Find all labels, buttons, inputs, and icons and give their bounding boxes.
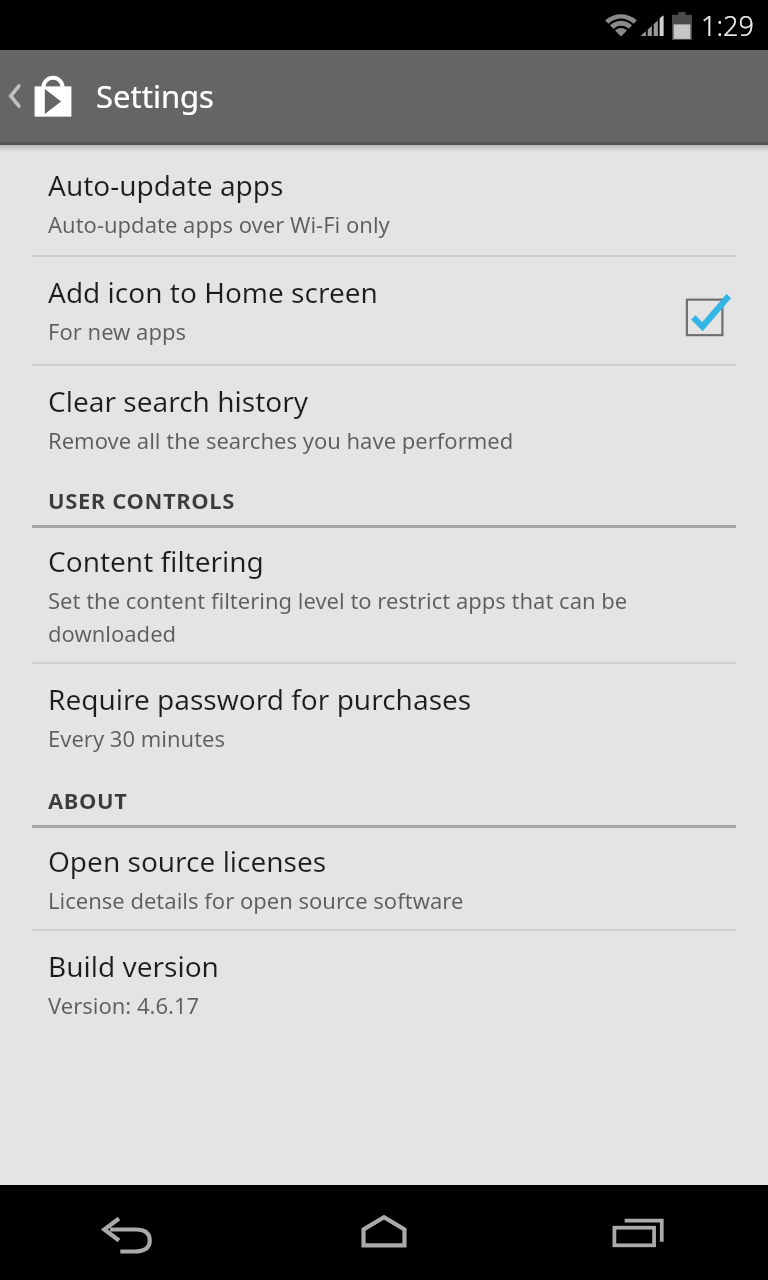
staticText: Auto-update apps bbox=[48, 166, 284, 204]
staticText: For new apps bbox=[48, 316, 187, 346]
staticText: Add icon to Home screen bbox=[48, 273, 378, 311]
staticText: USER CONTROLS bbox=[48, 485, 235, 515]
button[interactable]: Home bbox=[256, 1185, 512, 1280]
staticText: License details for open source software bbox=[48, 885, 464, 915]
staticText: Build version bbox=[48, 947, 219, 985]
button[interactable]: Navigate up bbox=[0, 62, 86, 130]
button[interactable]: Recent apps bbox=[512, 1185, 768, 1280]
button[interactable]: Add icon to Home screen checkbox bbox=[680, 287, 736, 343]
staticText: Settings bbox=[96, 75, 214, 117]
staticText: Auto-update apps over Wi-Fi only bbox=[48, 209, 390, 239]
button[interactable]: Build version bbox=[0, 931, 768, 1036]
staticText: Open source licenses bbox=[48, 842, 327, 880]
staticText: Require password for purchases bbox=[48, 680, 472, 718]
button[interactable]: Clear search history bbox=[0, 366, 768, 469]
button[interactable]: Auto-update apps bbox=[0, 152, 768, 255]
button[interactable]: Content filtering bbox=[0, 528, 768, 662]
staticText: ABOUT bbox=[48, 785, 128, 815]
staticText: Version: 4.6.17 bbox=[48, 990, 200, 1020]
staticText: Clear search history bbox=[48, 382, 309, 420]
button[interactable]: Add icon to Home screen bbox=[0, 257, 768, 364]
staticText: Content filtering bbox=[48, 542, 264, 580]
button[interactable]: Require password for purchases bbox=[0, 664, 768, 769]
button[interactable]: Back bbox=[0, 1185, 256, 1280]
staticText: Set the content filtering level to restr… bbox=[48, 585, 736, 648]
staticText: Remove all the searches you have perform… bbox=[48, 425, 514, 455]
button[interactable]: Open source licenses bbox=[0, 828, 768, 929]
staticText: Every 30 minutes bbox=[48, 723, 226, 753]
staticText: 1:29 bbox=[701, 7, 754, 44]
